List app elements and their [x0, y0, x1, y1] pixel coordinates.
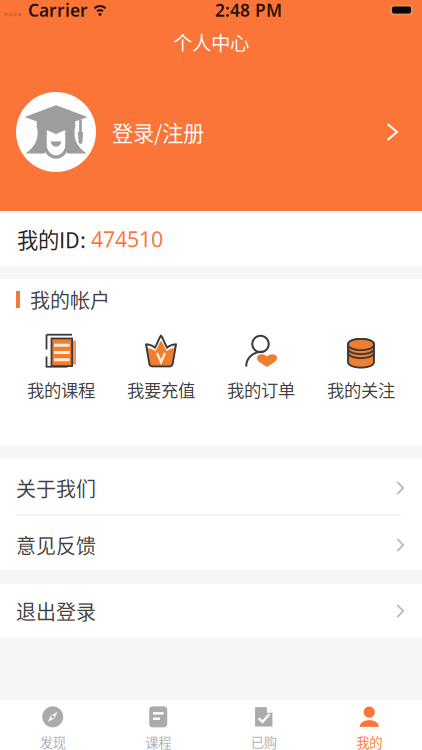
staticText: 发现	[40, 732, 66, 750]
button[interactable]: 登录/注册	[0, 64, 422, 211]
staticText: 我的ID:	[17, 224, 91, 254]
staticText: 我要充值	[127, 377, 195, 402]
staticText: 我的课程	[27, 377, 95, 402]
button[interactable]: 退出登录	[0, 584, 422, 638]
staticText: 我的关注	[327, 377, 395, 402]
staticText: 我的	[356, 732, 382, 750]
button[interactable]: 我要充值	[111, 334, 211, 402]
button[interactable]: 我的	[316, 706, 422, 750]
staticText: Carrier	[28, 0, 88, 21]
staticText: 登录/注册	[112, 117, 204, 147]
staticText: 我的帐户	[30, 285, 110, 314]
button[interactable]: 我的课程	[11, 334, 111, 402]
button[interactable]: 意见反馈	[0, 516, 422, 570]
button[interactable]: 课程	[105, 706, 211, 750]
button[interactable]: 发现	[0, 706, 105, 750]
staticText: 课程	[145, 732, 171, 750]
staticText: 个人中心	[173, 28, 249, 56]
staticText: 退出登录	[16, 596, 96, 625]
button[interactable]: 关于我们	[0, 458, 422, 514]
button[interactable]: 已购	[211, 706, 316, 750]
staticText: 474510	[91, 225, 163, 253]
button[interactable]: 我的订单	[211, 334, 311, 402]
staticText: 关于我们	[16, 473, 96, 502]
staticText: 2:48 PM	[215, 0, 282, 21]
staticText: 我的订单	[227, 377, 295, 402]
staticText: 意见反馈	[16, 530, 96, 559]
staticText: 已购	[251, 732, 277, 750]
button[interactable]: 我的关注	[311, 334, 411, 402]
